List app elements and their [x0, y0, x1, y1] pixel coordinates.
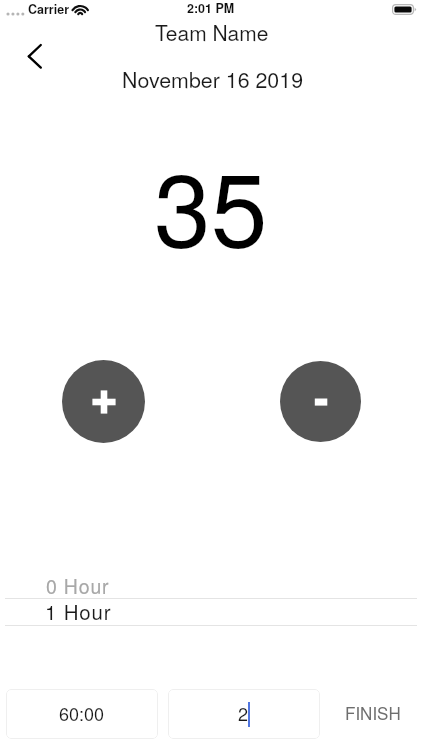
- button[interactable]: Back: [12, 38, 56, 76]
- staticText: FINISH: [345, 700, 401, 724]
- button[interactable]: 0 Hour: [0, 572, 422, 598]
- button[interactable]: FINISH: [330, 689, 416, 739]
- staticText: Carrier: [28, 0, 69, 18]
- staticText: 0 Hour: [46, 572, 110, 598]
- staticText: 2: [238, 700, 249, 726]
- staticText: 35: [154, 130, 268, 270]
- button[interactable]: Add point: [62, 360, 145, 443]
- staticText: Team Name: [155, 17, 269, 47]
- button[interactable]: 1 Hour: [0, 596, 422, 624]
- staticText: November 16 2019: [122, 63, 304, 94]
- staticText: 1 Hour: [45, 596, 112, 624]
- button[interactable]: 2: [168, 689, 320, 739]
- staticText: 60:00: [59, 700, 105, 726]
- button[interactable]: 60:00: [6, 689, 158, 739]
- staticText: 2:01 PM: [187, 0, 235, 17]
- button[interactable]: Subtract point: [280, 361, 361, 442]
